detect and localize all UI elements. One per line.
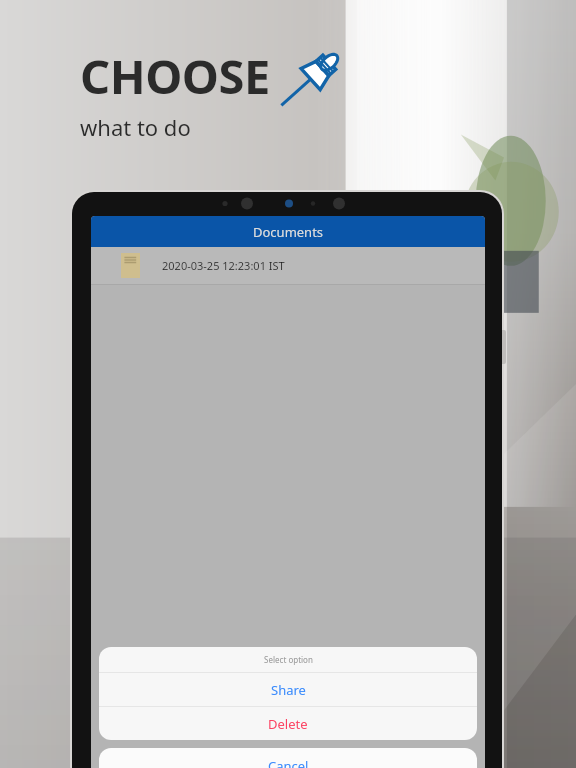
staticText: CHOOSE bbox=[80, 44, 270, 108]
staticText: Delete bbox=[268, 715, 308, 733]
button[interactable]: 2020-03-25 12:23:01 IST bbox=[91, 247, 485, 284]
staticText: 2020-03-25 12:23:01 IST bbox=[162, 258, 285, 273]
staticText: what to do bbox=[80, 112, 191, 142]
staticText: Documents bbox=[253, 223, 324, 241]
staticText: Share bbox=[271, 681, 306, 699]
button[interactable]: Cancel bbox=[99, 748, 477, 768]
staticText: Cancel bbox=[268, 757, 309, 768]
staticText: Select option bbox=[264, 654, 313, 665]
other: Pin bbox=[286, 45, 348, 107]
button[interactable]: Share bbox=[99, 673, 477, 706]
button[interactable]: Delete bbox=[99, 707, 477, 740]
